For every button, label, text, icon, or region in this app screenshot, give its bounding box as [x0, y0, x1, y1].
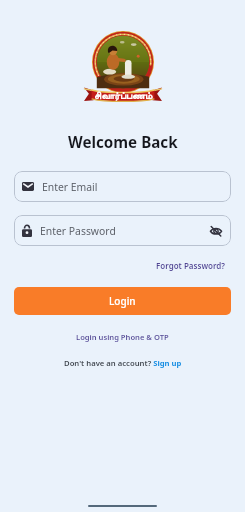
staticText: Welcome Back — [68, 132, 178, 153]
staticText: Forgot Password? — [156, 260, 225, 271]
staticText: Enter Email — [42, 180, 98, 194]
button[interactable]: Enter Email — [14, 171, 231, 202]
button[interactable]: Forgot Password? — [156, 260, 225, 271]
button[interactable]: Toggle password visibility — [210, 225, 222, 237]
staticText: Don't have an account? Sign up — [64, 358, 182, 368]
button[interactable]: Enter Password — [14, 215, 231, 246]
button[interactable]: Login using Phone & OTP — [76, 332, 169, 342]
button[interactable]: Login — [14, 287, 231, 315]
staticText: Enter Password — [40, 224, 116, 238]
staticText: சிவார்ப்பணம் — [94, 91, 153, 101]
staticText: Login — [109, 294, 136, 308]
staticText: Login using Phone & OTP — [76, 332, 169, 342]
button[interactable]: Don't have an account? Sign up — [64, 358, 182, 368]
